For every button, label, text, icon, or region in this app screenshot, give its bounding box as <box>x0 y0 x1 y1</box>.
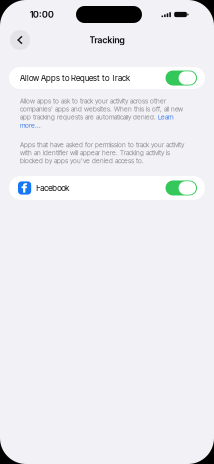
staticText: Allow Apps to Request to Track <box>20 73 130 83</box>
staticText: Tracking <box>89 35 124 45</box>
button[interactable]: Back <box>10 30 30 50</box>
staticText: 10:00 <box>30 9 54 20</box>
staticText: Facebook <box>36 183 69 193</box>
staticText: Apps that have asked for permission to t… <box>20 141 184 165</box>
staticText: Allow apps to ask to track your activity… <box>20 97 183 129</box>
button[interactable]: Allow Apps to Request to Track <box>9 67 205 89</box>
button[interactable]: Facebook <box>9 176 205 200</box>
